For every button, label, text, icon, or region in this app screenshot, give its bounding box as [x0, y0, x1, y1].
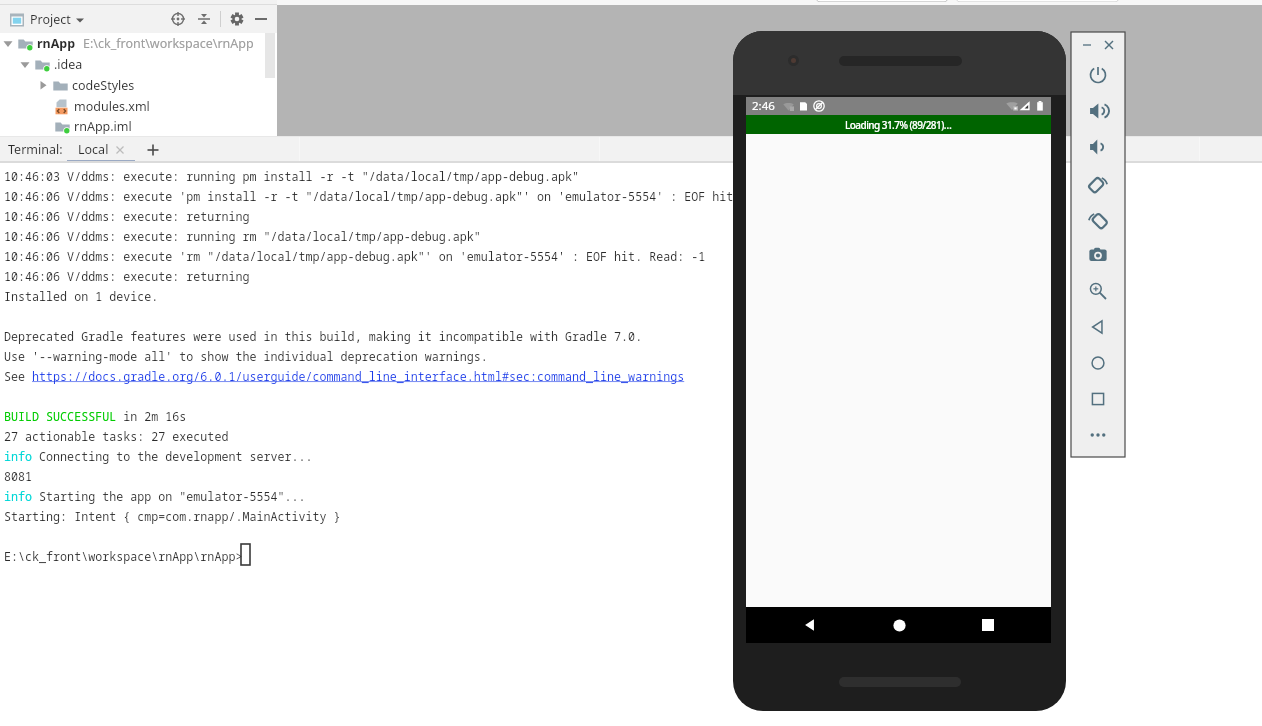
staticText: 10:46:06 V/ddms: execute: running rm "/d…: [4, 228, 481, 244]
staticText: 10:46:06 V/ddms: execute 'rm "/data/loca…: [4, 248, 706, 264]
staticText: 8081: [4, 468, 33, 484]
button[interactable]: Close: [1101, 37, 1117, 53]
staticText: modules.xml: [74, 98, 150, 115]
button[interactable]: rnApp.iml: [0, 117, 277, 136]
button[interactable]: Rotate right: [1071, 201, 1125, 237]
button[interactable]: .idea: [0, 54, 277, 75]
button[interactable]: Back: [1071, 309, 1125, 345]
button[interactable]: codeStyles: [0, 75, 277, 96]
staticText: Terminal:: [8, 141, 63, 158]
button[interactable]: modules.xml: [0, 96, 277, 117]
button[interactable]: Home: [1071, 345, 1125, 381]
button[interactable]: Take screenshot: [1071, 237, 1125, 273]
button[interactable]: More: [1071, 417, 1125, 453]
staticText: Project: [30, 11, 71, 28]
button[interactable]: Local: [67, 136, 135, 163]
button[interactable]: Minimize: [1079, 37, 1095, 53]
button[interactable]: Collapse All: [194, 9, 214, 29]
staticText: Loading 31.7% (89/281)…: [845, 118, 952, 132]
staticText: Installed on 1 device.: [4, 288, 159, 304]
staticText: See https://docs.gradle.org/6.0.1/usergu…: [4, 368, 685, 384]
staticText: 10:46:03 V/ddms: execute: running pm ins…: [4, 168, 580, 184]
button[interactable]: Hide: [251, 9, 271, 29]
staticText: rnApp: [37, 35, 76, 52]
staticText: 10:46:06 V/ddms: execute 'pm install -r …: [4, 188, 804, 204]
staticText: E:\ck_front\workspace\rnApp\rnApp>: [4, 548, 243, 564]
button[interactable]: rnApp: [0, 33, 277, 54]
button[interactable]: Power: [1071, 57, 1125, 93]
staticText: info Connecting to the development serve…: [4, 448, 313, 464]
staticText: 10:46:06 V/ddms: execute: returning: [4, 208, 250, 224]
button[interactable]: New session: [142, 139, 164, 161]
staticText: Use '--warning-mode all' to show the ind…: [4, 348, 488, 364]
button[interactable]: Project: [8, 9, 87, 30]
button[interactable]: Select Opened File: [168, 9, 188, 29]
button[interactable]: Rotate left: [1071, 165, 1125, 201]
button[interactable]: Recent apps: [966, 607, 1010, 643]
button[interactable]: Settings: [227, 9, 247, 29]
staticText: 10:46:06 V/ddms: execute: returning: [4, 268, 250, 284]
staticText: rnApp.iml: [74, 118, 132, 135]
staticText: .idea: [54, 56, 83, 73]
button[interactable]: Back: [788, 607, 832, 643]
button[interactable]: Volume down: [1071, 129, 1125, 165]
staticText: BUILD SUCCESSFUL in 2m 16s: [4, 408, 187, 424]
button[interactable]: Volume up: [1071, 93, 1125, 129]
staticText: info Starting the app on "emulator-5554"…: [4, 488, 306, 504]
staticText: Local: [78, 141, 109, 158]
button[interactable]: Overview: [1071, 381, 1125, 417]
button[interactable]: Home: [877, 607, 921, 643]
staticText: Deprecated Gradle features were used in …: [4, 328, 643, 344]
staticText: 2:46: [752, 98, 775, 114]
staticText: 27 actionable tasks: 27 executed: [4, 428, 229, 444]
staticText: codeStyles: [72, 77, 135, 94]
staticText: E:\ck_front\workspace\rnApp: [83, 35, 254, 52]
staticText: Starting: Intent { cmp=com.rnapp/.MainAc…: [4, 508, 341, 524]
button[interactable]: Zoom: [1071, 273, 1125, 309]
